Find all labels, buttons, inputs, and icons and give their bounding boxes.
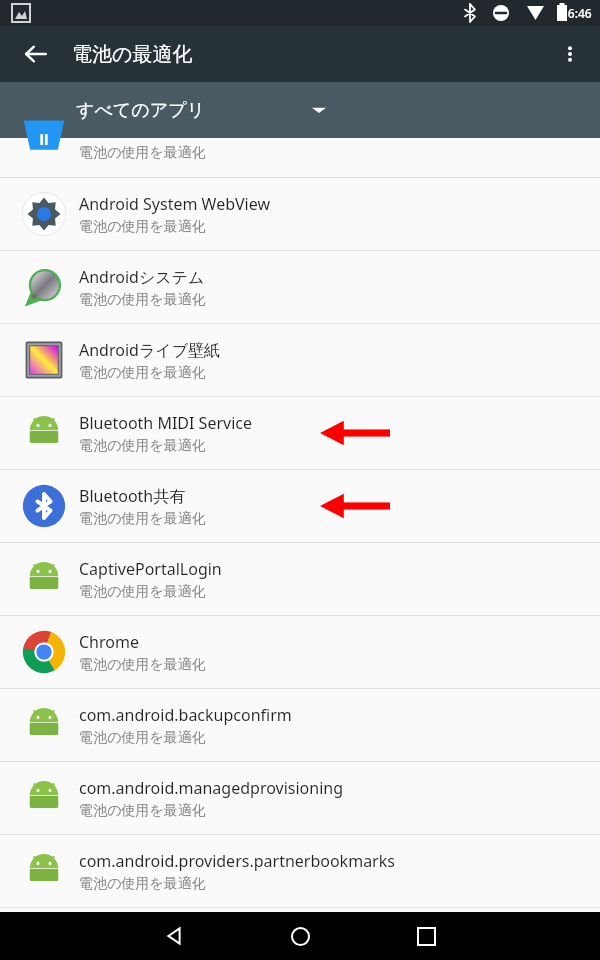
staticText: 電池の使用を最適化 (79, 729, 206, 747)
staticText: Androidライブ壁紙 (79, 339, 221, 361)
staticText: 電池の使用を最適化 (79, 583, 206, 601)
staticText: Chrome (79, 631, 139, 653)
button[interactable]: すべてのアプリ (0, 82, 600, 138)
button[interactable]: Back (12, 30, 60, 78)
button[interactable]: Chrome (0, 616, 600, 688)
button[interactable]: Androidシステム (0, 251, 600, 323)
button[interactable]: Androidライブ壁紙 (0, 324, 600, 396)
staticText: 16:46 (561, 5, 592, 21)
staticText: Androidシステム (79, 266, 205, 288)
button[interactable]: Recent apps (402, 912, 450, 960)
staticText: 電池の使用を最適化 (79, 144, 206, 162)
button[interactable]: Home (276, 912, 324, 960)
staticText: Bluetooth MIDI Service (79, 412, 252, 434)
staticText: 電池の使用を最適化 (79, 437, 206, 455)
button[interactable]: Bluetooth MIDI Service (0, 397, 600, 469)
button[interactable]: Back (150, 912, 198, 960)
staticText: 電池の使用を最適化 (79, 875, 206, 893)
staticText: 電池の最適化 (72, 42, 193, 67)
button[interactable]: com.android.providers.partnerbookmarks (0, 835, 600, 907)
button[interactable]: More options (546, 30, 594, 78)
staticText: 電池の使用を最適化 (79, 291, 206, 309)
staticText: Android System WebView (79, 193, 271, 215)
button[interactable]: 電池の使用を最適化 (0, 138, 600, 177)
staticText: 電池の使用を最適化 (79, 510, 206, 528)
staticText: すべてのアプリ (76, 99, 205, 122)
staticText: 電池の使用を最適化 (79, 218, 206, 236)
staticText: com.android.managedprovisioning (79, 777, 344, 799)
button[interactable]: com.android.backupconfirm (0, 689, 600, 761)
button[interactable]: com.android.managedprovisioning (0, 762, 600, 834)
staticText: CaptivePortalLogin (79, 558, 222, 580)
staticText: 電池の使用を最適化 (79, 364, 206, 382)
button[interactable]: Android System WebView (0, 178, 600, 250)
staticText: 電池の使用を最適化 (79, 656, 206, 674)
staticText: 電池の使用を最適化 (79, 802, 206, 820)
staticText: com.android.backupconfirm (79, 704, 292, 726)
button[interactable]: CaptivePortalLogin (0, 543, 600, 615)
staticText: com.android.providers.partnerbookmarks (79, 850, 395, 872)
button[interactable]: Bluetooth共有 (0, 470, 600, 542)
staticText: Bluetooth共有 (79, 485, 186, 507)
